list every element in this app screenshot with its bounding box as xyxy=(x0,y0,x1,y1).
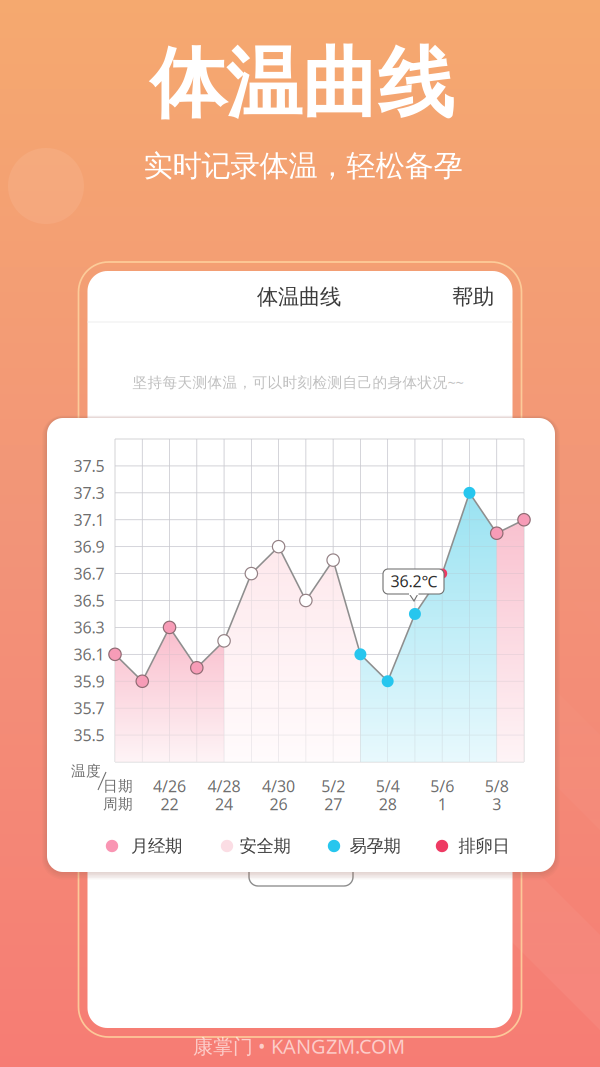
staticText: 温度 xyxy=(71,762,101,780)
staticText: 日期 xyxy=(103,777,133,795)
staticText: 周期 xyxy=(103,795,133,813)
button[interactable]: 帮助 xyxy=(439,271,507,323)
staticText: 5/4 xyxy=(376,775,400,797)
staticText: 5/2 xyxy=(321,775,345,797)
staticText: 36.9 xyxy=(73,536,104,557)
button[interactable]: 月经期 xyxy=(0,0,600,1067)
staticText: 康掌门 • KANGZM.COM xyxy=(193,1033,405,1059)
staticText: 36.5 xyxy=(73,590,104,611)
staticText: 体温曲线 xyxy=(150,37,454,131)
staticText: 实时记录体温，轻松备孕 xyxy=(143,148,462,184)
staticText: 帮助 xyxy=(452,284,494,310)
staticText: 36.7 xyxy=(73,563,104,584)
staticText: 27 xyxy=(324,793,342,815)
staticText: 5/8 xyxy=(485,775,509,797)
staticText: 4/28 xyxy=(208,775,241,797)
button[interactable]: 体温曲线 xyxy=(224,271,374,323)
staticText: 4/30 xyxy=(262,775,295,797)
staticText: 37.3 xyxy=(73,482,104,503)
button[interactable]: 易孕期 xyxy=(0,0,600,1067)
staticText: 排卵日 xyxy=(458,835,509,857)
staticText: 安全期 xyxy=(239,835,290,857)
staticText: 35.9 xyxy=(73,671,104,692)
staticText: 月经期 xyxy=(131,835,182,857)
staticText: 22 xyxy=(160,793,178,815)
staticText: 3 xyxy=(492,793,501,815)
staticText: 37.1 xyxy=(73,509,104,530)
button[interactable]: 排卵日 xyxy=(0,0,600,1067)
staticText: 体温曲线 xyxy=(257,284,341,310)
staticText: 37.5 xyxy=(73,455,104,476)
staticText: 5/6 xyxy=(430,775,454,797)
staticText: 24 xyxy=(215,793,233,815)
staticText: 36.3 xyxy=(73,617,104,638)
staticText: 35.5 xyxy=(73,724,104,746)
staticText: 4/26 xyxy=(153,775,186,797)
staticText: 1 xyxy=(438,793,447,815)
button[interactable]: 安全期 xyxy=(0,0,600,1067)
staticText: 易孕期 xyxy=(349,835,400,857)
staticText: 坚持每天测体温，可以时刻检测自己的身体状况~~ xyxy=(132,372,463,392)
staticText: 36.1 xyxy=(73,644,104,665)
staticText: 36.2℃ xyxy=(390,570,437,592)
staticText: 35.7 xyxy=(73,697,104,719)
staticText: 28 xyxy=(379,793,397,815)
staticText: 26 xyxy=(270,793,288,815)
